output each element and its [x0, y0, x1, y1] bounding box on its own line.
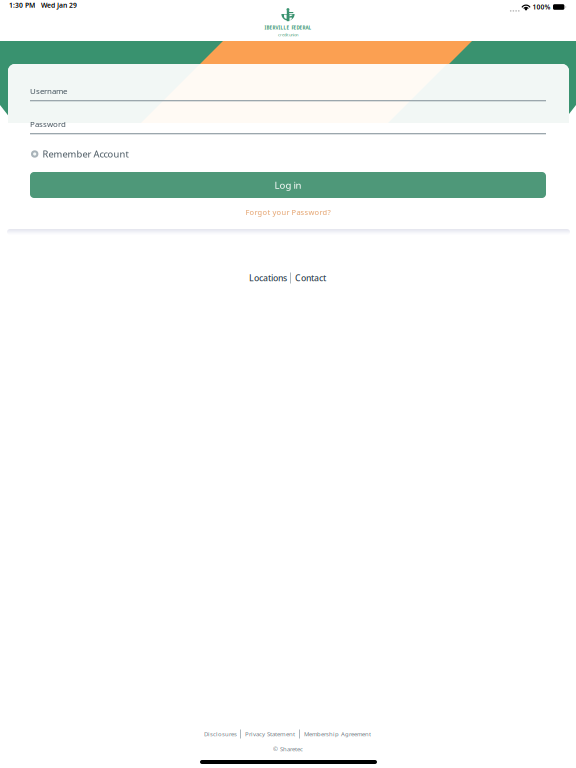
staticText: 100% [532, 2, 550, 12]
staticText: Username [30, 85, 67, 96]
button[interactable]: Forgot your Password? [30, 206, 546, 218]
staticText: Disclosures [204, 730, 237, 738]
staticText: Membership Agreement [304, 730, 371, 738]
button[interactable]: Log in [30, 172, 546, 198]
staticText: 1:30 PM Wed Jan 29 [9, 0, 77, 10]
staticText: IBERVILLE FEDERAL [264, 25, 311, 31]
button[interactable]: Privacy Statement [241, 729, 299, 739]
staticText: Forgot your Password? [245, 207, 330, 217]
staticText: Remember Account [42, 148, 128, 160]
button[interactable]: Contact [291, 270, 330, 286]
staticText: Password [30, 118, 66, 129]
staticText: Log in [274, 178, 301, 192]
staticText: Contact [295, 272, 326, 284]
staticText: Locations [249, 272, 287, 284]
button[interactable]: Remember Account [31, 147, 128, 161]
staticText: Privacy Statement [245, 730, 295, 738]
button[interactable]: Membership Agreement [300, 729, 375, 739]
button[interactable]: Disclosures [201, 729, 240, 739]
staticText: © Sharetec [273, 745, 303, 753]
button[interactable]: Locations [246, 270, 290, 286]
staticText: credit union [278, 32, 298, 37]
